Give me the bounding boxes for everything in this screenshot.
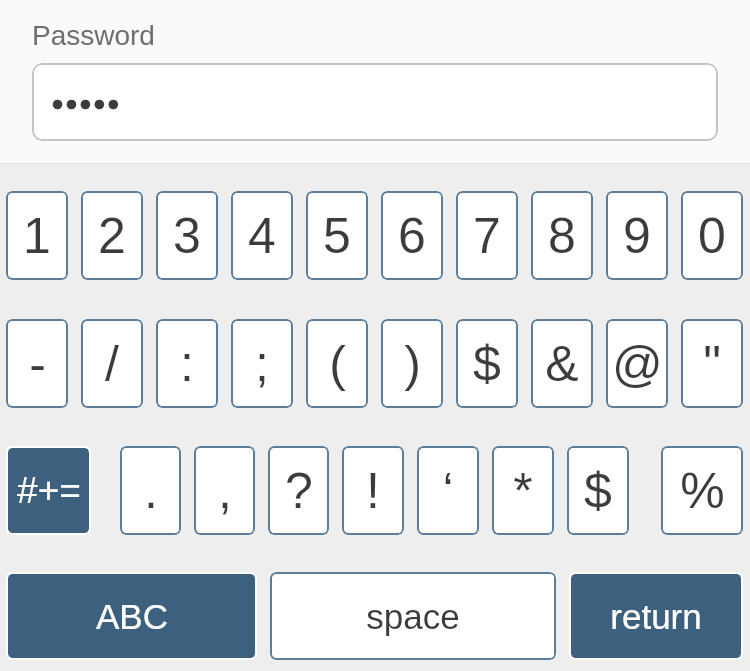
button[interactable]: ? (270, 448, 327, 533)
staticText: $ (584, 463, 612, 519)
staticText: ? (285, 463, 313, 519)
staticText: 3 (173, 208, 201, 264)
staticText: @ (612, 336, 663, 392)
staticText: $ (473, 336, 501, 392)
button[interactable]: % (663, 448, 741, 533)
button[interactable]: 4 (233, 193, 291, 278)
button[interactable]: . (122, 448, 179, 533)
button[interactable]: 6 (383, 193, 441, 278)
button[interactable]: 3 (158, 193, 216, 278)
button[interactable]: ! (344, 448, 402, 533)
staticText: 1 (23, 208, 51, 264)
staticText: & (545, 336, 579, 392)
button[interactable]: " (683, 321, 741, 406)
button[interactable]: , (196, 448, 253, 533)
button[interactable]: 2 (83, 193, 141, 278)
button[interactable]: ) (383, 321, 441, 406)
button[interactable]: ‘ (419, 448, 477, 533)
button[interactable]: / (83, 321, 141, 406)
staticText: " (703, 336, 721, 392)
button[interactable]: 9 (608, 193, 666, 278)
button[interactable]: $ (569, 448, 627, 533)
staticText: % (680, 463, 725, 519)
button[interactable]: return (571, 574, 741, 658)
staticText: 4 (248, 208, 276, 264)
staticText: ‘ (442, 463, 454, 519)
staticText: return (610, 597, 702, 636)
button[interactable]: 8 (533, 193, 591, 278)
button[interactable]: - (8, 321, 66, 406)
staticText: 9 (623, 208, 651, 264)
staticText: / (105, 336, 119, 392)
button[interactable]: & (533, 321, 591, 406)
staticText: 7 (473, 208, 501, 264)
staticText: : (180, 336, 194, 392)
button[interactable]: ; (233, 321, 291, 406)
staticText: ! (366, 463, 380, 519)
staticText: 6 (398, 208, 426, 264)
button[interactable]: #+= (8, 448, 89, 533)
button[interactable]: 0 (683, 193, 741, 278)
staticText: , (218, 463, 232, 519)
staticText: space (366, 597, 460, 636)
button[interactable]: ABC (8, 574, 255, 658)
staticText: Password (32, 20, 155, 51)
staticText: ABC (96, 597, 168, 636)
staticText: . (144, 463, 158, 519)
button[interactable]: 1 (8, 193, 66, 278)
button[interactable]: ( (308, 321, 366, 406)
staticText: ) (404, 336, 421, 392)
button[interactable]: @ (608, 321, 666, 406)
staticText: * (513, 463, 533, 519)
button[interactable]: space (272, 574, 554, 658)
staticText: 5 (323, 208, 351, 264)
button[interactable]: $ (458, 321, 516, 406)
button[interactable]: * (494, 448, 552, 533)
staticText: 8 (548, 208, 576, 264)
button[interactable]: 7 (458, 193, 516, 278)
button[interactable]: : (158, 321, 216, 406)
staticText: #+= (17, 470, 81, 511)
staticText: 0 (698, 208, 726, 264)
staticText: ( (329, 336, 346, 392)
staticText: 2 (98, 208, 126, 264)
button[interactable]: Password input (32, 63, 718, 141)
staticText: ; (255, 336, 269, 392)
button[interactable]: 5 (308, 193, 366, 278)
staticText: - (29, 336, 46, 392)
